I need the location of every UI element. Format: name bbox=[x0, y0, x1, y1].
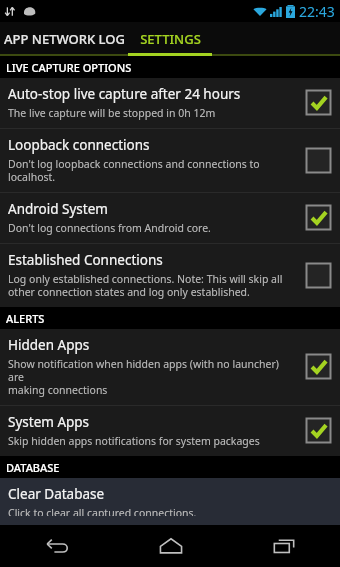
button[interactable]: Recent apps bbox=[227, 525, 340, 567]
button[interactable]: Checked bbox=[305, 353, 332, 380]
staticText: Don't log loopback connections and conne… bbox=[8, 157, 260, 184]
button[interactable]: Unchecked bbox=[305, 262, 332, 289]
button[interactable]: Loopback connections bbox=[0, 129, 340, 192]
button[interactable]: System Apps bbox=[0, 406, 340, 456]
button[interactable]: APP NETWORK LOG bbox=[0, 22, 128, 56]
button[interactable]: Android System bbox=[0, 193, 340, 243]
button[interactable]: Hidden Apps bbox=[0, 329, 340, 405]
button[interactable] bbox=[212, 22, 340, 56]
staticText: Clear Database bbox=[8, 485, 105, 503]
button[interactable]: Established Connections bbox=[0, 244, 340, 307]
staticText: SETTINGS bbox=[140, 30, 201, 48]
staticText: DATABASE bbox=[6, 460, 60, 475]
staticText: Android System bbox=[8, 200, 108, 218]
button[interactable]: Auto-stop live capture after 24 hours bbox=[0, 78, 340, 128]
staticText: ALERTS bbox=[6, 311, 45, 326]
staticText: Loopback connections bbox=[8, 136, 150, 154]
button[interactable]: Checked bbox=[305, 89, 332, 116]
button[interactable]: Checked bbox=[305, 204, 332, 231]
staticText: System Apps bbox=[8, 413, 90, 431]
button[interactable]: Checked bbox=[305, 417, 332, 444]
staticText: Don't log connections from Android core. bbox=[8, 221, 211, 235]
button[interactable]: SETTINGS bbox=[128, 22, 212, 56]
staticText: Established Connections bbox=[8, 251, 163, 269]
button[interactable]: Unchecked bbox=[305, 147, 332, 174]
staticText: Skip hidden apps notifications for syste… bbox=[8, 434, 260, 448]
staticText: LIVE CAPTURE OPTIONS bbox=[6, 60, 132, 75]
staticText: APP NETWORK LOG bbox=[4, 30, 125, 48]
button[interactable]: Home bbox=[114, 525, 227, 567]
staticText: The live capture will be stopped in 0h 1… bbox=[8, 106, 216, 120]
button[interactable]: Clear Database bbox=[0, 478, 340, 525]
button[interactable]: Back bbox=[0, 525, 114, 567]
staticText: Click to clear all captured connections. bbox=[8, 506, 197, 516]
staticText: Hidden Apps bbox=[8, 336, 90, 354]
staticText: Show notification when hidden apps (with… bbox=[8, 357, 297, 397]
staticText: 22:43 bbox=[299, 2, 335, 21]
staticText: Auto-stop live capture after 24 hours bbox=[8, 85, 241, 103]
staticText: Log only established connections. Note: … bbox=[8, 272, 283, 299]
